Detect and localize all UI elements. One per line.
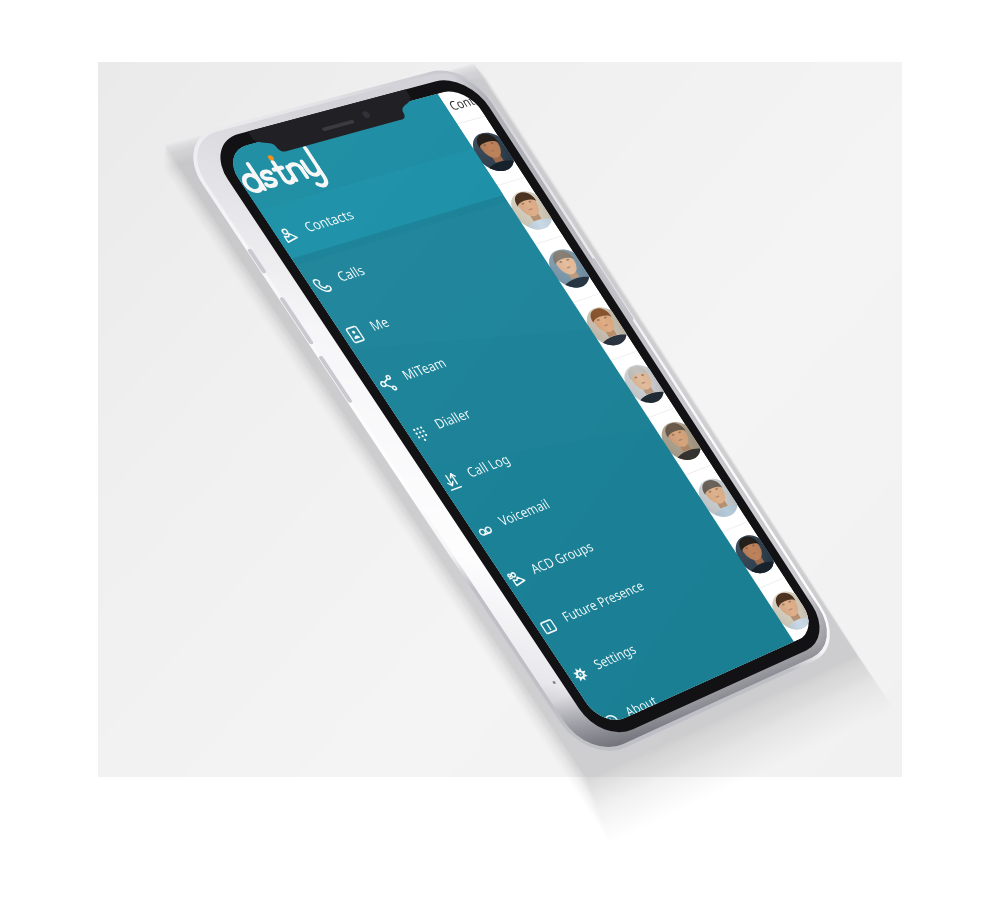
button[interactable]: Contact 6 xyxy=(648,408,711,475)
button[interactable]: About xyxy=(588,621,809,754)
button[interactable]: Contact 8 xyxy=(722,521,784,588)
button[interactable]: dstny xyxy=(221,94,469,203)
button[interactable]: Me xyxy=(330,250,570,366)
button[interactable]: Settings xyxy=(556,575,780,706)
button[interactable]: Call Log xyxy=(428,391,661,513)
button[interactable]: Contact 1 xyxy=(459,119,525,186)
button[interactable]: Contact 3 xyxy=(535,236,600,303)
button[interactable]: Contacts list xyxy=(440,86,485,123)
button[interactable]: MiTeam xyxy=(363,297,600,415)
button[interactable]: Calls xyxy=(297,202,539,316)
button[interactable]: Contact 5 xyxy=(611,351,675,418)
button[interactable]: Voicemail xyxy=(460,437,690,561)
button[interactable]: Future Presence xyxy=(524,529,750,657)
button[interactable]: ACD Groups xyxy=(492,483,720,609)
button[interactable]: Contact 2 xyxy=(497,177,563,244)
button[interactable]: Contacts xyxy=(264,155,508,266)
button[interactable]: Contact 9 xyxy=(759,577,821,644)
button[interactable]: Contact 4 xyxy=(573,293,637,360)
button[interactable]: Contact 7 xyxy=(685,465,748,532)
button[interactable]: Dialler xyxy=(395,344,630,464)
